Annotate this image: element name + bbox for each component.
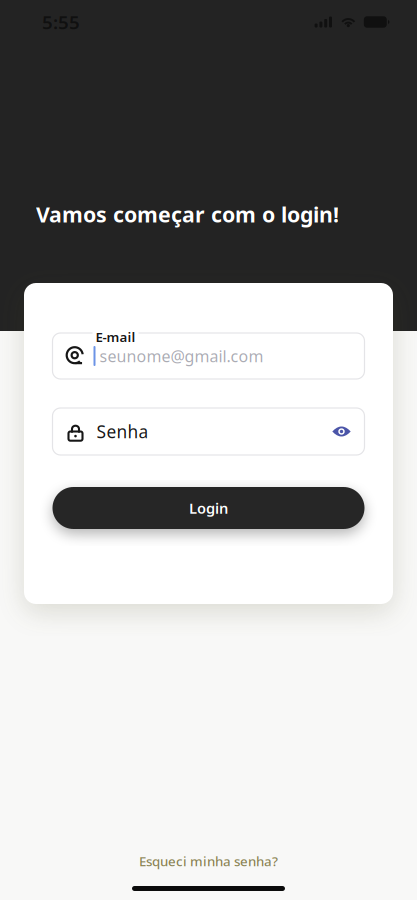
staticText: Senha [96, 420, 148, 443]
staticText: Login [189, 498, 228, 518]
staticText: seunome@gmail.com [99, 345, 263, 367]
staticText: Vamos começar com o login! [36, 200, 339, 228]
button[interactable]: Login [52, 487, 364, 529]
button[interactable]: seunome@gmail.com [52, 333, 364, 379]
button[interactable]: Senha [52, 408, 364, 455]
staticText: E-mail [95, 328, 135, 346]
staticText: Esqueci minha senha? [139, 852, 278, 870]
button[interactable]: Esqueci minha senha? [0, 848, 417, 874]
staticText: 5:55 [42, 10, 80, 34]
